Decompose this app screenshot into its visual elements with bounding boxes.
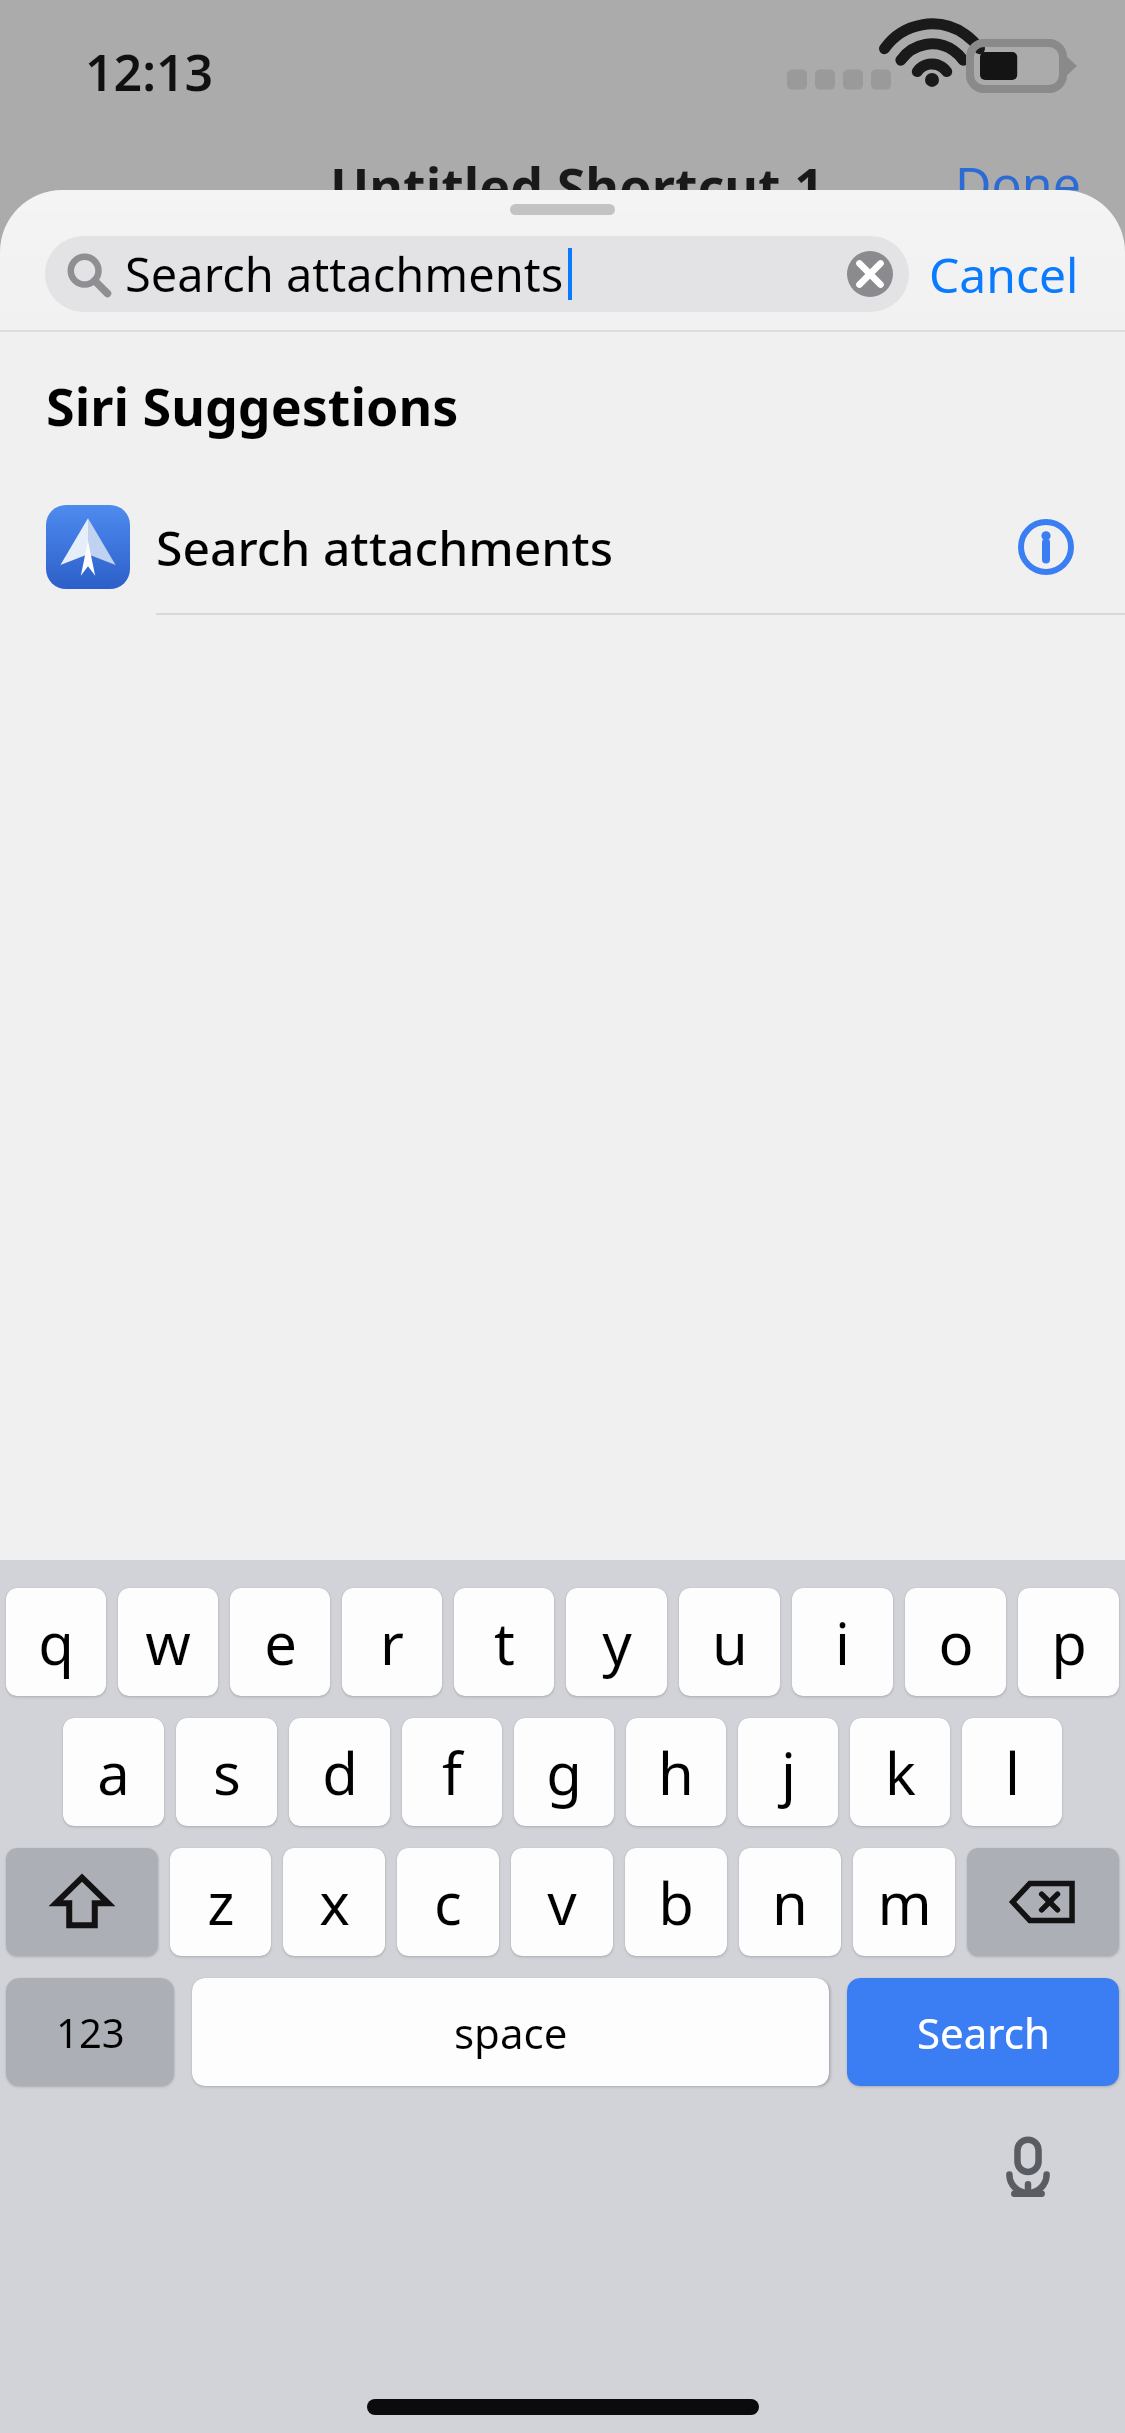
staticText: i <box>835 1603 850 1682</box>
button[interactable]: w <box>118 1588 218 1696</box>
staticText: a <box>97 1733 130 1812</box>
staticText: s <box>213 1733 241 1812</box>
staticText: n <box>772 1863 808 1942</box>
staticText: Cancel <box>929 242 1079 307</box>
button[interactable]: r <box>342 1588 442 1696</box>
staticText: Siri Suggestions <box>46 370 459 441</box>
button[interactable]: l <box>962 1718 1062 1826</box>
staticText: o <box>938 1603 974 1682</box>
button[interactable]: s <box>176 1718 277 1826</box>
staticText: space <box>454 2004 568 2061</box>
button[interactable]: Shift <box>6 1848 158 1956</box>
button[interactable]: v <box>511 1848 613 1956</box>
staticText: k <box>885 1733 916 1812</box>
button[interactable]: b <box>625 1848 727 1956</box>
staticText: j <box>781 1733 796 1812</box>
staticText: y <box>602 1603 632 1682</box>
button[interactable]: h <box>626 1718 726 1826</box>
button[interactable]: Cancel <box>923 234 1085 315</box>
button[interactable]: 123 <box>6 1978 174 2086</box>
staticText: h <box>658 1733 694 1812</box>
button[interactable]: z <box>170 1848 271 1956</box>
staticText: Search attachments <box>125 242 564 306</box>
button[interactable]: o <box>905 1588 1006 1696</box>
button[interactable]: Dictate <box>983 2122 1073 2212</box>
staticText: t <box>494 1603 515 1682</box>
button[interactable]: e <box>230 1588 330 1696</box>
staticText: g <box>546 1733 582 1812</box>
button[interactable]: Backspace <box>967 1848 1119 1956</box>
staticText: z <box>207 1863 235 1942</box>
staticText: q <box>38 1603 74 1682</box>
staticText: Search <box>917 2004 1050 2061</box>
button[interactable]: q <box>6 1588 106 1696</box>
button[interactable]: y <box>566 1588 667 1696</box>
button[interactable]: Search <box>847 1978 1119 2086</box>
button[interactable]: j <box>738 1718 838 1826</box>
button[interactable]: Clear text <box>845 249 895 299</box>
button[interactable]: m <box>853 1848 955 1956</box>
staticText: b <box>658 1863 694 1942</box>
staticText: v <box>547 1863 577 1942</box>
staticText: x <box>319 1863 350 1942</box>
button[interactable]: Search attachments <box>45 236 909 312</box>
staticText: w <box>145 1603 191 1682</box>
button[interactable]: a <box>63 1718 164 1826</box>
button[interactable]: c <box>397 1848 499 1956</box>
staticText: Done <box>955 150 1081 218</box>
button[interactable]: space <box>192 1978 829 2086</box>
staticText: e <box>264 1603 297 1682</box>
button[interactable]: x <box>283 1848 385 1956</box>
button[interactable]: Search attachments <box>0 481 1125 613</box>
staticText: c <box>434 1863 462 1942</box>
button[interactable]: p <box>1018 1588 1119 1696</box>
staticText: d <box>322 1733 358 1812</box>
button[interactable]: k <box>850 1718 950 1826</box>
staticText: Search attachments <box>156 515 614 580</box>
staticText: f <box>442 1733 462 1812</box>
staticText: r <box>380 1603 404 1682</box>
staticText: m <box>877 1863 932 1942</box>
button[interactable]: t <box>454 1588 554 1696</box>
button[interactable]: More info <box>1007 508 1085 586</box>
staticText: Untitled Shortcut 1 <box>330 150 824 221</box>
button[interactable]: d <box>289 1718 390 1826</box>
staticText: 12:13 <box>85 38 214 106</box>
button[interactable]: i <box>792 1588 893 1696</box>
button[interactable]: f <box>402 1718 502 1826</box>
staticText: p <box>1051 1603 1087 1682</box>
staticText: l <box>1005 1733 1020 1812</box>
staticText: 123 <box>56 2005 125 2059</box>
staticText: u <box>712 1603 748 1682</box>
button[interactable]: n <box>739 1848 841 1956</box>
button[interactable]: u <box>679 1588 780 1696</box>
button[interactable]: g <box>514 1718 614 1826</box>
